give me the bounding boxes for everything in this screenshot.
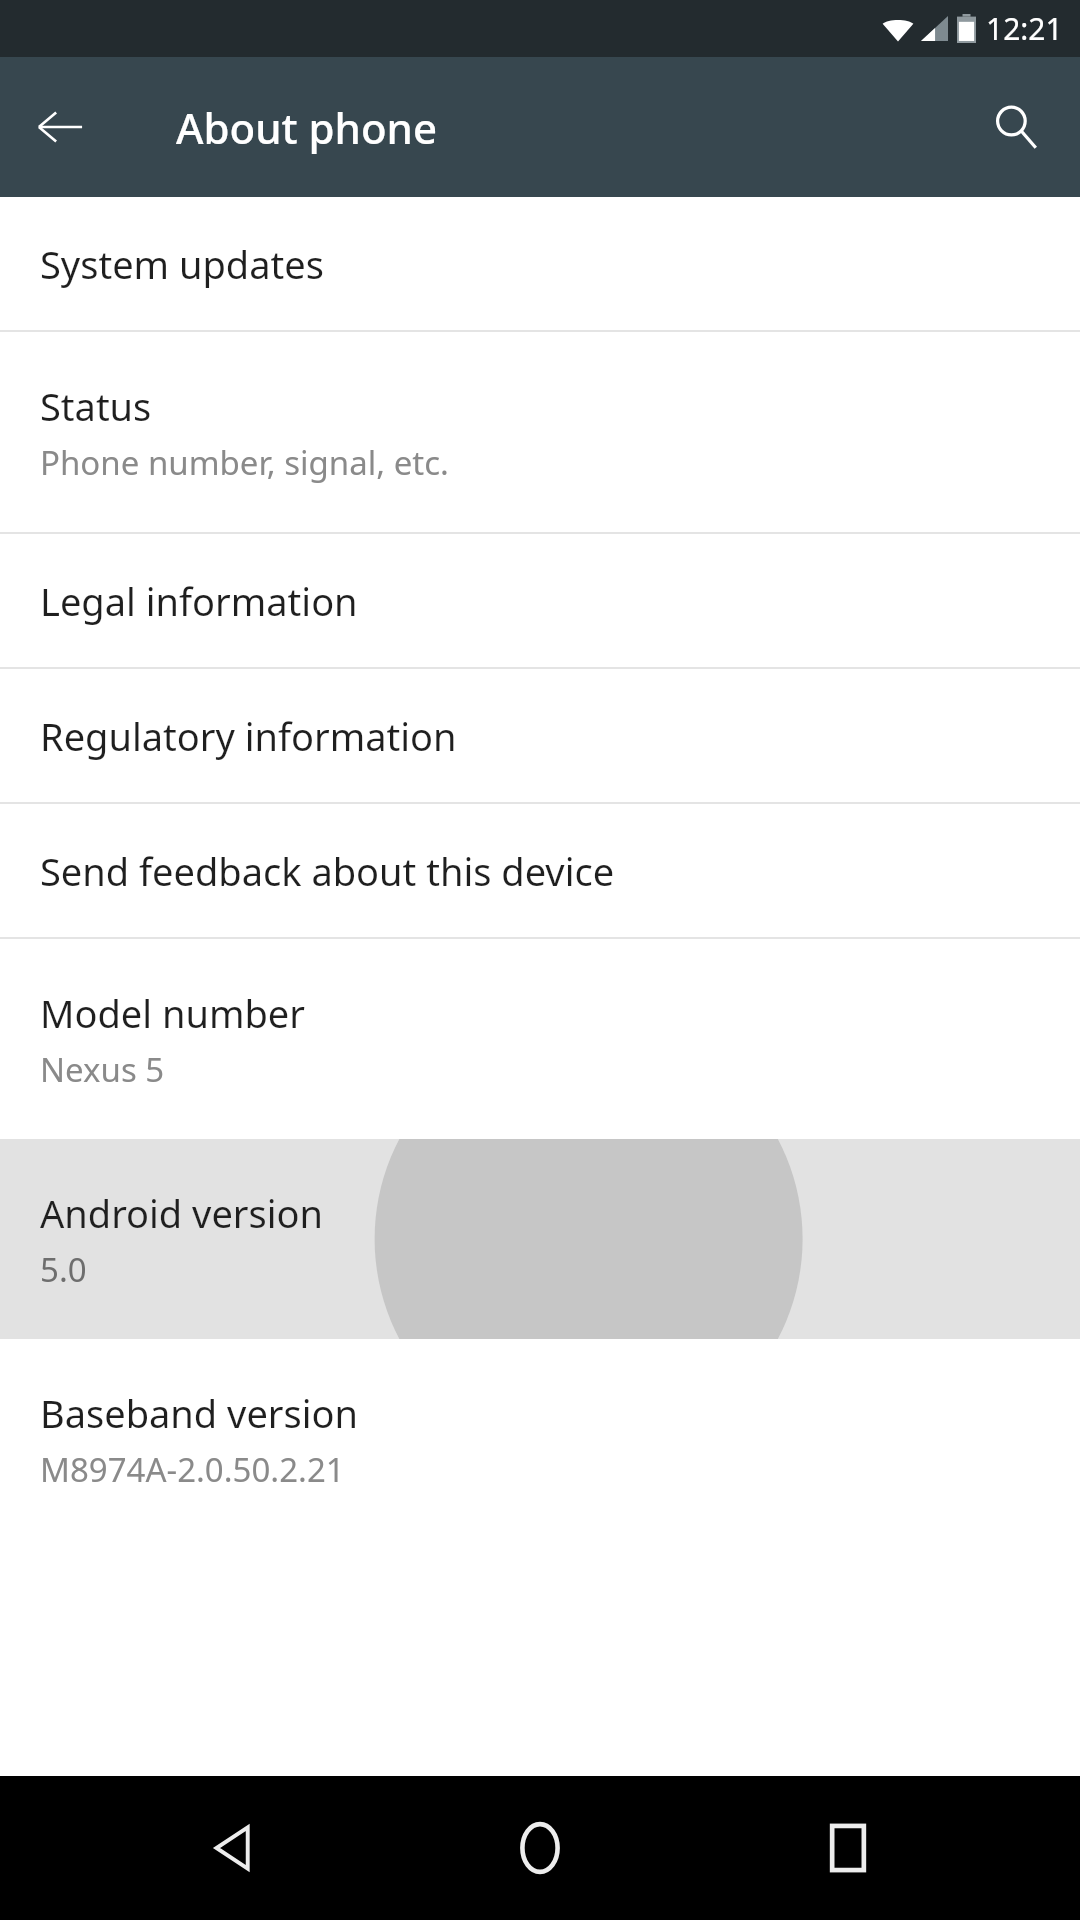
button[interactable]: System updates [0, 197, 1080, 330]
staticText: Nexus 5 [40, 1047, 165, 1092]
staticText: Baseband version [40, 1387, 358, 1439]
staticText: Model number [40, 987, 305, 1039]
staticText: M8974A-2.0.50.2.21 [40, 1447, 345, 1492]
button[interactable]: Home [465, 1776, 615, 1920]
button[interactable]: Legal information [0, 534, 1080, 667]
staticText: Android version [40, 1187, 324, 1239]
staticText: 5.0 [40, 1247, 87, 1292]
staticText: Send feedback about this device [40, 845, 615, 897]
button[interactable]: Search [978, 89, 1054, 165]
staticText: Legal information [40, 575, 358, 627]
staticText: About phone [176, 99, 438, 156]
staticText: System updates [40, 238, 324, 290]
button[interactable]: Back [24, 91, 96, 163]
button[interactable]: Back [158, 1776, 308, 1920]
button[interactable]: Android version [0, 1139, 1080, 1339]
button[interactable]: Model number [0, 939, 1080, 1139]
button[interactable]: Baseband version [0, 1339, 1080, 1539]
staticText: Regulatory information [40, 710, 457, 762]
staticText: Phone number, signal, etc. [40, 440, 449, 485]
staticText: 12:21 [986, 8, 1063, 49]
button[interactable]: Recent apps [773, 1776, 923, 1920]
button[interactable]: Regulatory information [0, 669, 1080, 802]
button[interactable]: Send feedback about this device [0, 804, 1080, 937]
button[interactable]: Status [0, 332, 1080, 532]
staticText: Status [40, 380, 152, 432]
